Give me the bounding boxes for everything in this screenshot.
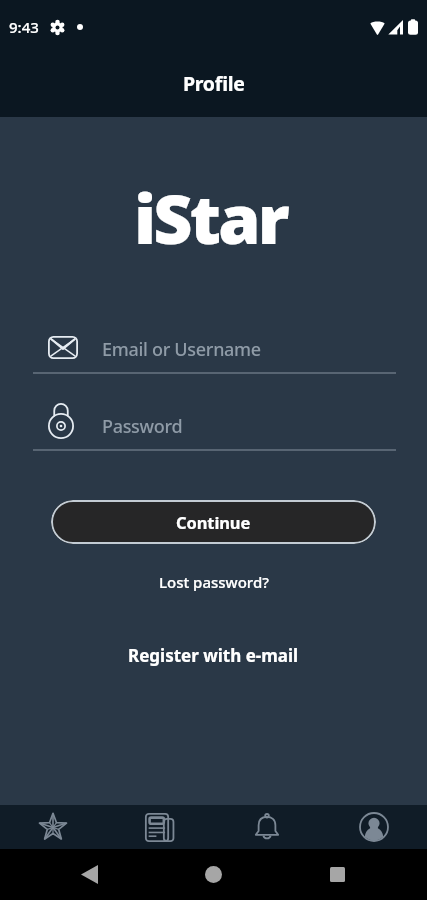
button[interactable]: Register with e-mail [118,640,309,671]
button[interactable]: Favorites [0,805,106,849]
button[interactable]: Continue [51,500,376,544]
button[interactable]: Lost password? [149,568,279,596]
staticText: Continue [176,511,251,533]
staticText: 9:43 [9,17,39,37]
staticText: Profile [183,70,245,97]
button[interactable]: Email or Username [33,330,396,374]
button[interactable]: Password [33,407,396,451]
button[interactable]: Profile [320,805,427,849]
button[interactable]: News [106,805,213,849]
staticText: Password [102,414,183,439]
staticText: Lost password? [159,572,269,592]
staticText: Email or Username [102,337,261,362]
staticText: iStar [134,171,287,264]
staticText: Register with e-mail [128,644,299,667]
button[interactable]: Notifications [213,805,320,849]
